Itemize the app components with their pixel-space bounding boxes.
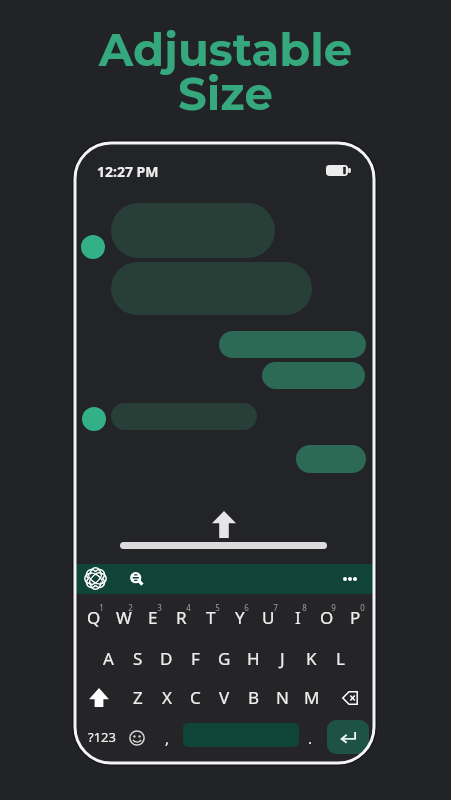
button[interactable]: K bbox=[297, 639, 326, 677]
staticText: L bbox=[336, 647, 345, 670]
staticText: E bbox=[148, 606, 158, 629]
staticText: 4 bbox=[183, 602, 194, 613]
button[interactable] bbox=[111, 403, 257, 430]
button[interactable]: J bbox=[268, 639, 297, 677]
staticText: 9 bbox=[328, 602, 339, 613]
staticText: 2 bbox=[125, 602, 136, 613]
staticText: 0 bbox=[357, 602, 368, 613]
button[interactable]: X bbox=[152, 678, 181, 716]
button[interactable]: Z bbox=[123, 678, 152, 716]
staticText: S bbox=[133, 647, 143, 670]
staticText: 1 bbox=[96, 602, 107, 613]
button[interactable]: Backspace bbox=[342, 691, 358, 705]
button[interactable]: Enter bbox=[327, 720, 369, 754]
button[interactable]: F bbox=[181, 639, 210, 677]
button[interactable]: I bbox=[283, 598, 312, 636]
button[interactable]: ?123 bbox=[85, 724, 119, 750]
staticText: V bbox=[219, 686, 230, 709]
button[interactable]: W bbox=[109, 598, 138, 636]
staticText: . bbox=[308, 728, 313, 748]
button[interactable]: Search GIF bbox=[130, 572, 143, 585]
button[interactable]: V bbox=[210, 678, 239, 716]
button[interactable]: S bbox=[123, 639, 152, 677]
staticText: 12:27 PM bbox=[97, 162, 159, 181]
button[interactable]: N bbox=[268, 678, 297, 716]
staticText: 8 bbox=[299, 602, 310, 613]
staticText: M bbox=[304, 686, 320, 709]
staticText: X bbox=[162, 686, 172, 709]
staticText: F bbox=[191, 647, 200, 670]
staticText: 7 bbox=[270, 602, 281, 613]
staticText: K bbox=[306, 647, 317, 670]
button[interactable]: More options bbox=[343, 576, 359, 582]
button[interactable]: C bbox=[181, 678, 210, 716]
button[interactable] bbox=[111, 262, 312, 315]
staticText: P bbox=[350, 606, 361, 629]
staticText: U bbox=[262, 606, 275, 629]
staticText: Size bbox=[0, 66, 451, 121]
staticText: , bbox=[165, 728, 170, 748]
button[interactable]: , bbox=[158, 725, 176, 751]
staticText: 6 bbox=[241, 602, 252, 613]
button[interactable]: P bbox=[341, 598, 370, 636]
button[interactable]: AI assistant bbox=[86, 568, 105, 589]
staticText: R bbox=[176, 606, 187, 629]
other: Battery bbox=[326, 165, 351, 176]
staticText: A bbox=[103, 647, 114, 670]
button[interactable]: Q bbox=[79, 598, 108, 636]
button[interactable] bbox=[262, 362, 365, 389]
button[interactable]: H bbox=[239, 639, 268, 677]
button[interactable]: . bbox=[302, 725, 318, 751]
staticText: Y bbox=[235, 606, 245, 629]
button[interactable]: U bbox=[254, 598, 283, 636]
staticText: D bbox=[160, 647, 173, 670]
staticText: B bbox=[248, 686, 260, 709]
button[interactable]: Shift bbox=[89, 688, 109, 707]
staticText: 3 bbox=[154, 602, 165, 613]
staticText: N bbox=[276, 686, 289, 709]
button[interactable]: Emoji bbox=[129, 730, 145, 746]
staticText: O bbox=[320, 606, 334, 629]
button[interactable]: E bbox=[138, 598, 167, 636]
staticText: J bbox=[280, 647, 285, 670]
button[interactable] bbox=[219, 331, 366, 358]
staticText: H bbox=[247, 647, 260, 670]
staticText: C bbox=[190, 686, 201, 709]
staticText: I bbox=[295, 606, 301, 629]
staticText: Z bbox=[133, 686, 143, 709]
button[interactable]: T bbox=[196, 598, 225, 636]
staticText: ?123 bbox=[88, 728, 116, 746]
button[interactable]: L bbox=[326, 639, 355, 677]
button[interactable]: B bbox=[239, 678, 268, 716]
button[interactable]: M bbox=[297, 678, 326, 716]
button[interactable]: D bbox=[152, 639, 181, 677]
button[interactable]: G bbox=[210, 639, 239, 677]
button[interactable]: O bbox=[312, 598, 341, 636]
staticText: T bbox=[206, 606, 216, 629]
button[interactable]: R bbox=[167, 598, 196, 636]
staticText: Q bbox=[87, 606, 101, 629]
button[interactable]: A bbox=[94, 639, 123, 677]
staticText: 5 bbox=[212, 602, 223, 613]
staticText: G bbox=[218, 647, 231, 670]
staticText: Adjustable bbox=[0, 22, 451, 77]
staticText: W bbox=[116, 606, 132, 629]
button[interactable] bbox=[111, 203, 275, 258]
button[interactable]: Y bbox=[225, 598, 254, 636]
button[interactable] bbox=[296, 445, 366, 473]
